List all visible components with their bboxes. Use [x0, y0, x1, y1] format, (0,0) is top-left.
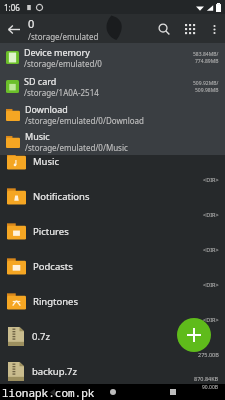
staticText: <DIR> [203, 316, 219, 323]
staticText: <DIR> [203, 211, 219, 218]
staticText: /storage/emulated [28, 31, 99, 42]
button[interactable]: Grid view [177, 16, 203, 42]
button[interactable]: Back [0, 16, 26, 42]
staticText: /storage/emulated/0 [24, 58, 102, 69]
button[interactable]: More options [203, 18, 225, 40]
button[interactable]: Download [0, 101, 225, 128]
staticText: /storage/emulated/0/Download [25, 115, 144, 126]
staticText: <DIR> [203, 246, 219, 253]
staticText: 583.84MB/ [193, 51, 219, 58]
button[interactable]: Add [177, 318, 211, 352]
staticText: Podcasts [33, 260, 73, 273]
button[interactable]: Notifications [0, 185, 225, 220]
button[interactable]: 0.7z [0, 325, 225, 360]
staticText: Music [25, 130, 50, 142]
button[interactable]: Podcasts [0, 255, 225, 290]
staticText: Device memory [24, 46, 90, 58]
button[interactable]: Search [151, 16, 177, 42]
button[interactable]: Pictures [0, 220, 225, 255]
staticText: Download [25, 103, 68, 115]
button[interactable]: backup.7z [0, 360, 225, 384]
button[interactable]: Device memory [0, 43, 225, 72]
staticText: /storage/emulated/0/Music [25, 142, 128, 153]
staticText: Notifications [33, 190, 90, 203]
staticText: 275.00B [198, 351, 219, 358]
staticText: Pictures [33, 225, 69, 238]
staticText: 1:06 [4, 2, 20, 13]
staticText: <DIR> [203, 281, 219, 288]
button[interactable]: SD card [0, 72, 225, 101]
staticText: /storage/1A0A-2514 [24, 87, 99, 98]
staticText: 0 [28, 16, 35, 31]
staticText: Music [33, 155, 60, 168]
staticText: backup.7z [32, 365, 77, 378]
staticText: 0.7z [32, 330, 50, 343]
staticText: 90.00B [202, 384, 219, 391]
staticText: Ringtones [33, 295, 79, 308]
staticText: 509.92MB/ [193, 80, 219, 87]
button[interactable]: Music [0, 128, 225, 155]
staticText: SD card [24, 75, 57, 87]
staticText: <DIR> [203, 176, 219, 183]
staticText: 870.84KB [194, 375, 219, 382]
button[interactable]: Back [44, 384, 60, 400]
button[interactable]: Ringtones [0, 290, 225, 325]
button[interactable]: Home [105, 384, 121, 400]
button[interactable]: Music [0, 150, 225, 185]
button[interactable]: Recents [165, 384, 181, 400]
staticText: lionapk.com.pk [2, 385, 95, 400]
staticText: 509.98MB [195, 87, 219, 94]
staticText: 774.89MB [195, 58, 219, 65]
